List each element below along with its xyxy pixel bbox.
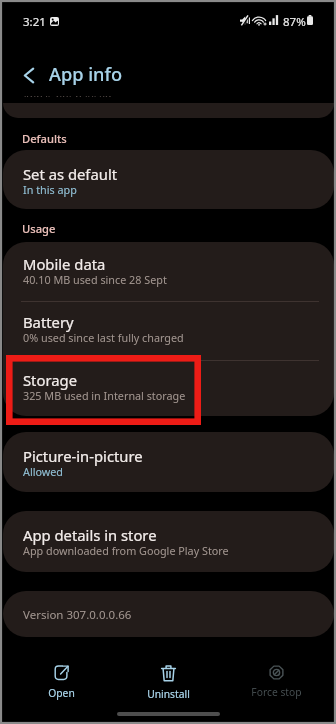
staticText: Storage bbox=[23, 370, 77, 390]
button[interactable]: Picture-in-picture bbox=[3, 432, 334, 492]
staticText: Mobile data bbox=[23, 254, 106, 274]
staticText: 40.10 MB used since 28 Sept bbox=[23, 272, 167, 287]
staticText: Open bbox=[48, 686, 75, 700]
staticText: App downloaded from Google Play Store bbox=[23, 543, 229, 558]
staticText: App info bbox=[49, 62, 123, 87]
staticText: 87% bbox=[283, 14, 306, 30]
button[interactable]: Navigate up bbox=[12, 58, 45, 92]
button[interactable]: Open bbox=[11, 652, 111, 708]
staticText: Version 307.0.0.0.66 bbox=[23, 607, 132, 623]
button[interactable]: Mobile data bbox=[3, 242, 334, 300]
button[interactable]: App details in store bbox=[3, 511, 334, 572]
staticText: Force stop bbox=[251, 685, 302, 699]
button[interactable]: Force stop bbox=[226, 652, 326, 708]
button[interactable]: Battery bbox=[3, 300, 334, 358]
staticText: 325 MB used in Internal storage bbox=[23, 388, 186, 403]
button[interactable]: Uninstall bbox=[118, 652, 218, 708]
staticText: Defaults bbox=[22, 131, 67, 146]
staticText: Allowed bbox=[23, 464, 64, 479]
staticText: Usage bbox=[22, 221, 56, 236]
staticText: Uninstall bbox=[147, 687, 190, 701]
staticText: Battery bbox=[23, 312, 74, 332]
button[interactable]: Storage bbox=[3, 358, 334, 416]
staticText: Picture-in-picture bbox=[23, 446, 143, 466]
staticText: 3:21 bbox=[23, 14, 46, 30]
staticText: Set as default bbox=[23, 164, 118, 184]
staticText: App details in store bbox=[23, 525, 157, 545]
staticText: 0% used since last fully charged bbox=[23, 330, 184, 345]
button[interactable]: Set as default bbox=[3, 150, 334, 209]
staticText: App is not paused bbox=[23, 96, 112, 97]
staticText: In this app bbox=[23, 182, 77, 197]
